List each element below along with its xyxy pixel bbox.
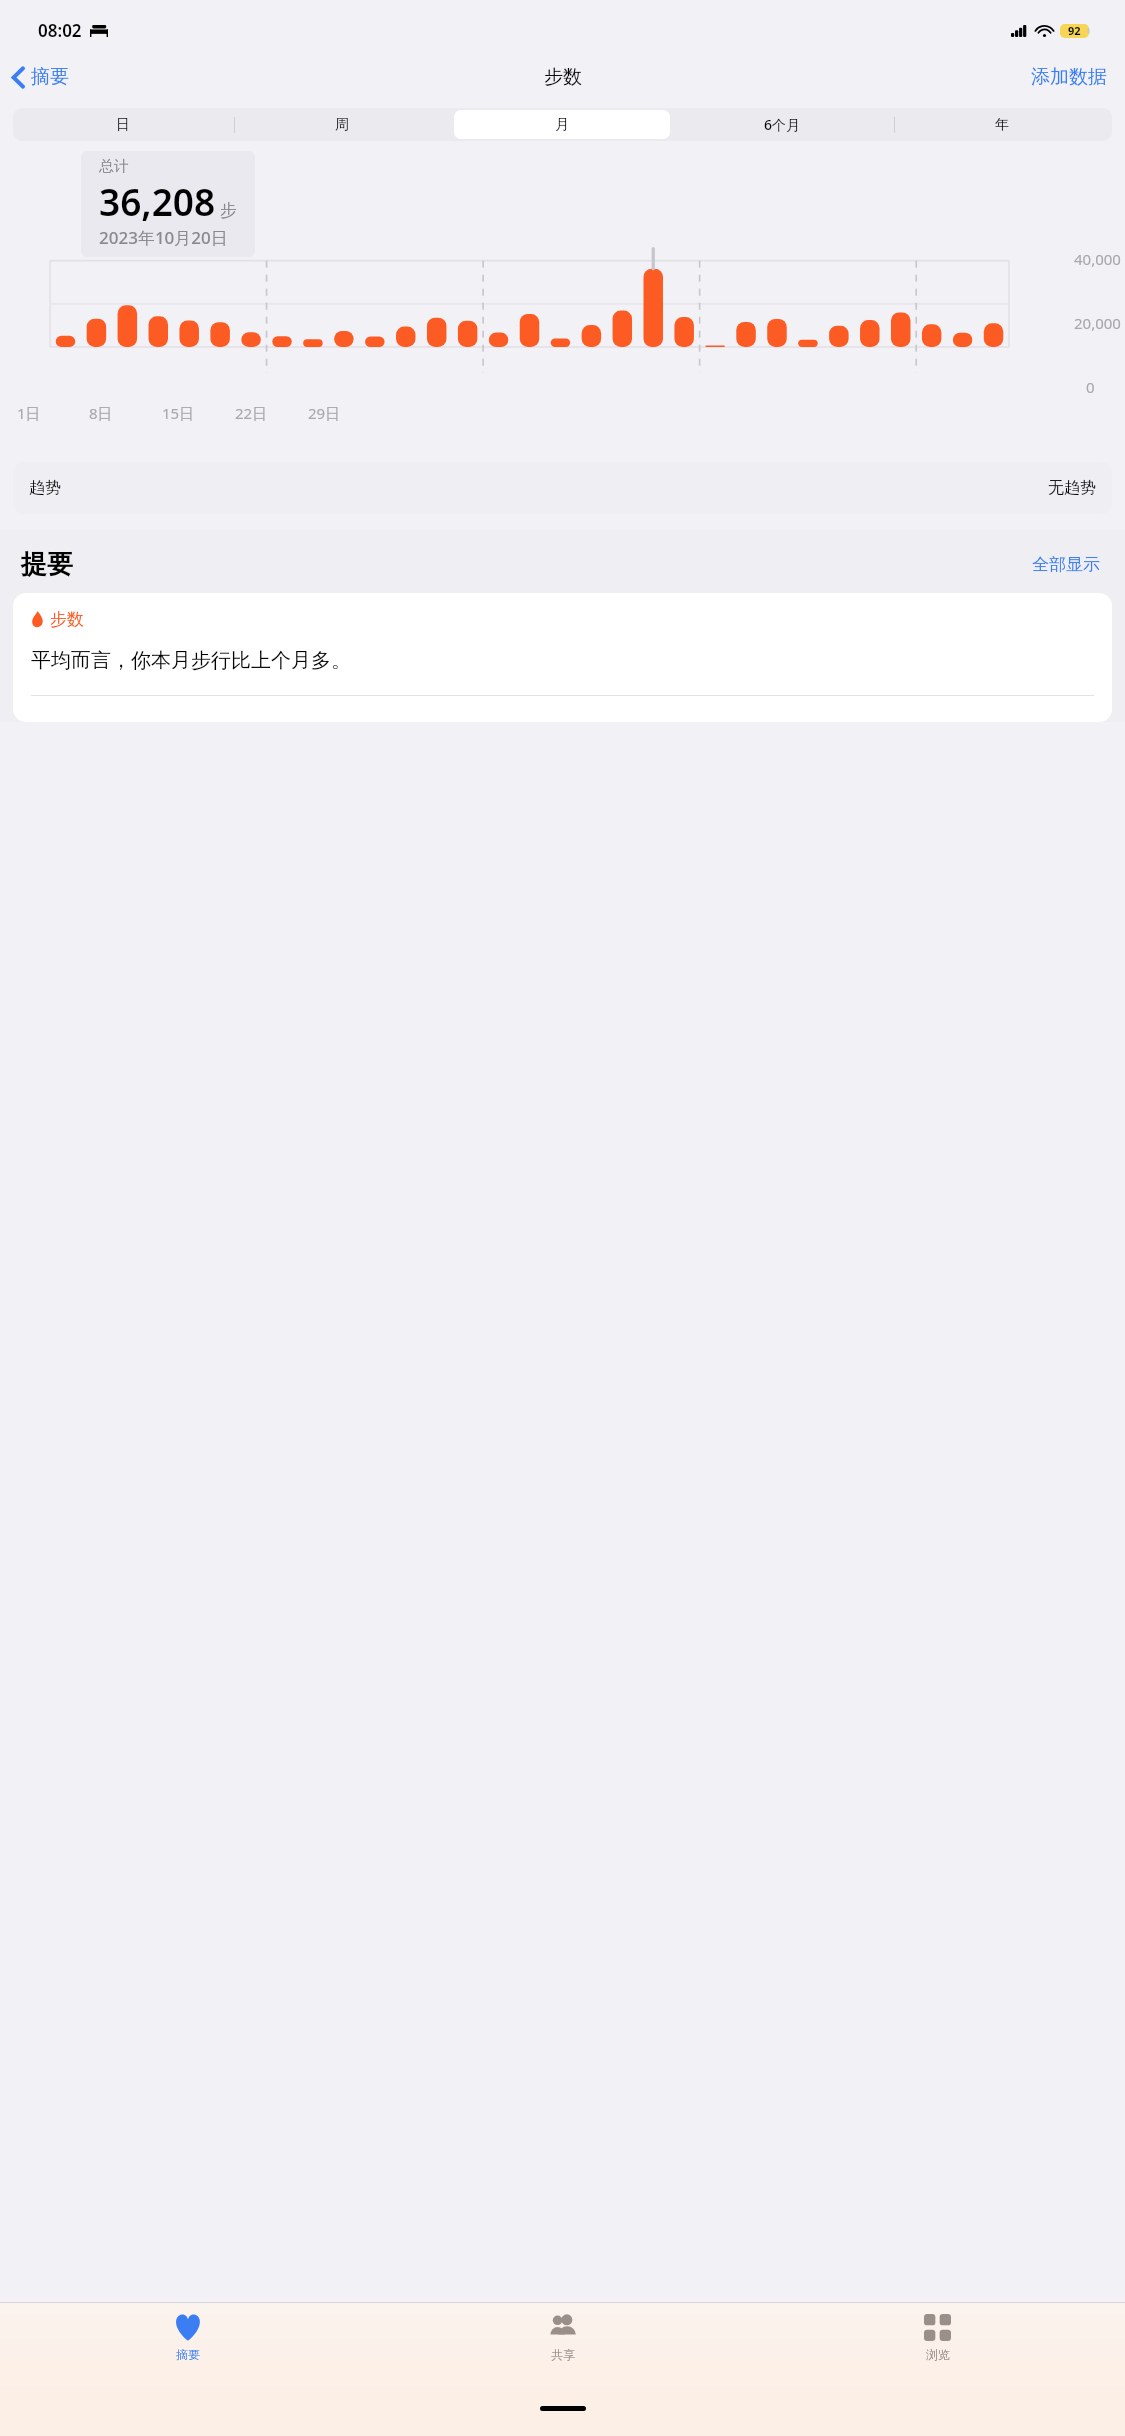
staticText: 40,000 <box>1074 249 1121 269</box>
staticText: 摘要 <box>176 2347 200 2362</box>
staticText: 无趋势 <box>1048 478 1096 498</box>
button[interactable]: 全部显示 <box>1028 550 1104 579</box>
staticText: 趋势 <box>29 478 61 498</box>
staticText: 提要 <box>21 548 73 581</box>
button[interactable]: 摘要 <box>0 61 77 93</box>
button[interactable]: 步数 <box>13 593 1112 722</box>
staticText: 08:02 <box>38 19 82 42</box>
staticText: 92 <box>1068 23 1081 38</box>
staticText: 平均而言，你本月步行比上个月多。 <box>31 648 351 673</box>
staticText: 6个月 <box>764 115 801 134</box>
staticText: 2023年10月20日 <box>99 226 228 249</box>
staticText: 共享 <box>551 2347 575 2362</box>
other: 共享 <box>547 2315 579 2339</box>
button[interactable]: 周 <box>234 110 450 139</box>
staticText: 1日 <box>17 403 41 423</box>
button[interactable]: 年 <box>894 110 1110 139</box>
other: 摘要 <box>173 2313 203 2341</box>
staticText: 0 <box>1086 377 1095 397</box>
button[interactable]: 浏览 <box>750 2302 1125 2398</box>
staticText: 摘要 <box>31 65 69 89</box>
button[interactable]: 共享 <box>375 2302 750 2398</box>
button[interactable]: 摘要 <box>0 2302 375 2398</box>
staticText: 步数 <box>50 609 84 630</box>
staticText: 15日 <box>162 403 195 423</box>
button[interactable]: 添加数据 <box>1013 59 1125 95</box>
staticText: 8日 <box>89 403 113 423</box>
staticText: 22日 <box>235 403 268 423</box>
staticText: 周 <box>335 116 349 134</box>
staticText: 浏览 <box>926 2347 950 2362</box>
staticText: 36,208 <box>99 176 216 226</box>
staticText: 年 <box>995 116 1009 134</box>
other: 浏览 <box>924 2314 951 2341</box>
staticText: 20,000 <box>1074 313 1121 333</box>
staticText: 日 <box>116 116 130 134</box>
staticText: 总计 <box>99 157 129 176</box>
button[interactable]: 6个月 <box>674 110 890 139</box>
button[interactable]: 趋势 <box>13 462 1112 514</box>
staticText: 步数 <box>544 65 582 89</box>
staticText: 步 <box>220 200 237 221</box>
button[interactable]: 月 <box>454 110 670 139</box>
staticText: 月 <box>555 116 569 134</box>
staticText: 29日 <box>308 403 341 423</box>
button[interactable]: 日 <box>15 110 230 139</box>
